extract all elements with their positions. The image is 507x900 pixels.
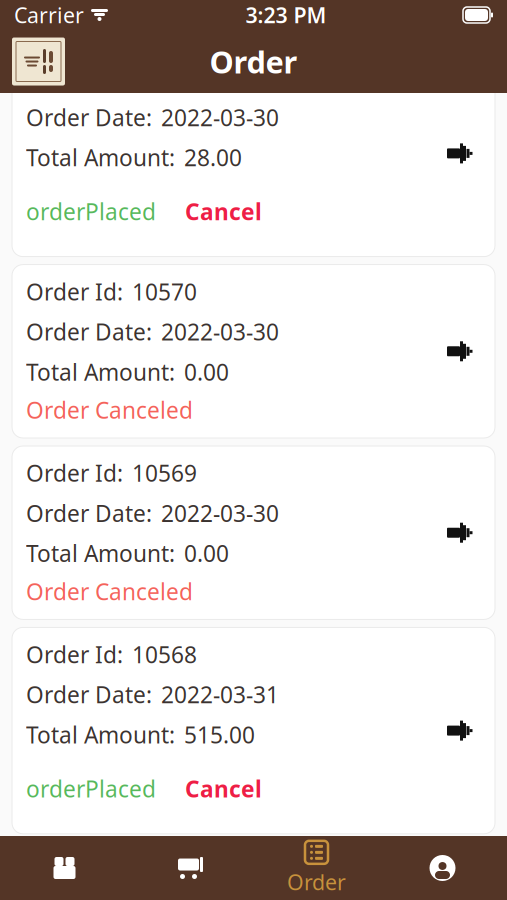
button[interactable]: Order Id:	[12, 627, 495, 834]
staticText: 2022-03-30	[161, 102, 279, 132]
button[interactable]: Home	[1, 836, 127, 900]
staticText: 0.00	[184, 538, 229, 568]
button[interactable]: Cart	[127, 836, 253, 900]
staticText: 515.00	[184, 720, 255, 750]
staticText: Order Id:	[26, 639, 123, 669]
staticText: Total Amount:	[26, 538, 175, 568]
button[interactable]: Order Id:	[12, 842, 495, 886]
staticText: Order Date:	[26, 102, 152, 132]
staticText: Total Amount:	[26, 142, 175, 172]
button[interactable]: Cancel	[156, 774, 262, 804]
staticText: 10567	[132, 851, 197, 881]
staticText: 2022-03-31	[161, 679, 279, 710]
staticText: 10569	[132, 458, 197, 488]
staticText: 0.00	[184, 357, 229, 387]
staticText: Order Id:	[26, 458, 123, 488]
button[interactable]: Cancel	[156, 196, 262, 227]
staticText: Order Date:	[26, 317, 152, 347]
staticText: Order Id:	[26, 277, 123, 307]
staticText: 28.00	[184, 142, 242, 172]
button[interactable]: Order	[253, 836, 379, 900]
staticText: Total Amount:	[26, 357, 175, 387]
staticText: Order Canceled	[26, 576, 193, 606]
staticText: Order Id:	[26, 851, 123, 881]
staticText: Cancel	[185, 196, 262, 227]
staticText: Order	[287, 868, 346, 896]
staticText: Cancel	[185, 774, 262, 804]
staticText: 3:23 PM	[245, 1, 326, 29]
staticText: orderPlaced	[26, 196, 156, 227]
staticText: 2022-03-30	[161, 317, 279, 347]
button[interactable]: Profile	[379, 836, 505, 900]
staticText: Order Date:	[26, 679, 152, 710]
button[interactable]: Home logo	[12, 37, 65, 85]
staticText: 10570	[132, 277, 197, 307]
staticText: 2022-03-30	[161, 498, 279, 528]
staticText: Carrier	[14, 1, 84, 29]
staticText: 10568	[132, 639, 197, 669]
button[interactable]: Order Id:	[12, 446, 495, 619]
button[interactable]: Order Id:	[12, 265, 495, 438]
staticText: Order	[209, 41, 297, 82]
staticText: orderPlaced	[26, 774, 156, 804]
staticText: Order Canceled	[26, 395, 193, 425]
staticText: Order Date:	[26, 498, 152, 528]
staticText: Total Amount:	[26, 720, 175, 750]
button[interactable]: Order Id:	[12, 50, 495, 257]
staticText: Order Id:	[26, 62, 123, 92]
